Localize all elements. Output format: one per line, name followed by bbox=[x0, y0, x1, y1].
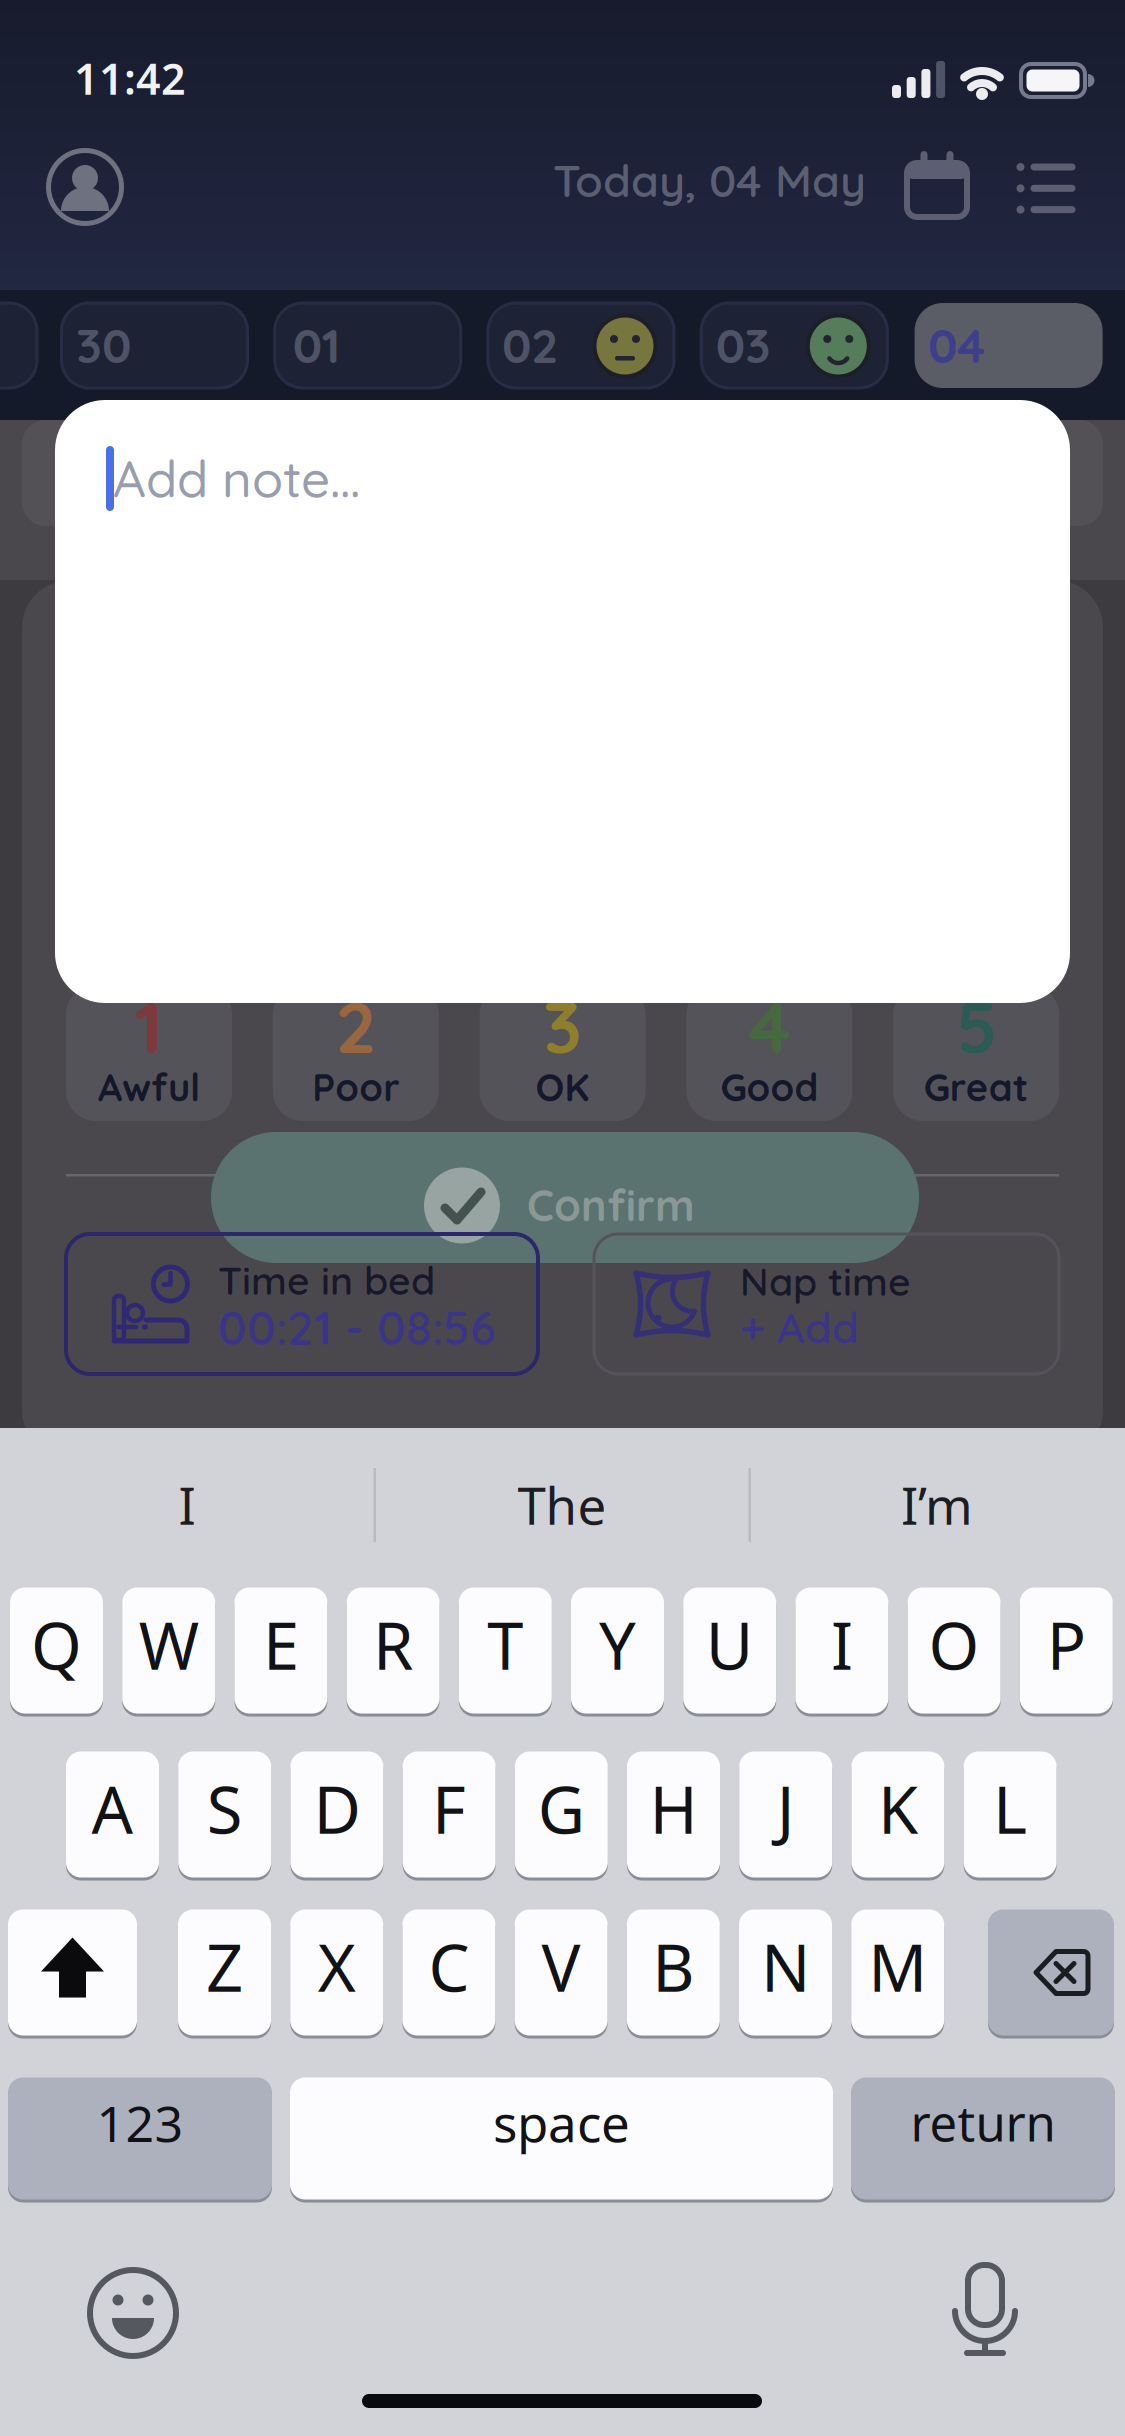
button[interactable]: Diary entries bbox=[1016, 163, 1076, 214]
button[interactable]: T bbox=[459, 1586, 552, 1715]
staticText: H bbox=[649, 1764, 697, 1853]
button[interactable]: return bbox=[851, 2076, 1115, 2201]
button[interactable]: W bbox=[122, 1586, 215, 1715]
button[interactable]: L bbox=[964, 1750, 1057, 1879]
button[interactable]: J bbox=[739, 1750, 832, 1879]
staticText: 2 bbox=[335, 981, 376, 1071]
staticText: M bbox=[868, 1922, 927, 2011]
staticText: A bbox=[91, 1764, 133, 1853]
button[interactable]: 3 bbox=[480, 985, 646, 1121]
button[interactable]: 02 bbox=[488, 303, 674, 388]
button[interactable]: I bbox=[795, 1586, 888, 1715]
staticText: Great bbox=[924, 1063, 1029, 1111]
button[interactable]: 03 bbox=[701, 303, 887, 388]
button[interactable]: R bbox=[347, 1586, 440, 1715]
staticText: 03 bbox=[716, 315, 771, 375]
staticText: 5 bbox=[956, 981, 997, 1071]
staticText: I’m bbox=[901, 1470, 973, 1540]
button[interactable]: 30 bbox=[61, 303, 247, 388]
staticText: G bbox=[538, 1764, 585, 1853]
button[interactable]: C bbox=[402, 1908, 495, 2037]
button[interactable]: Y bbox=[571, 1586, 664, 1715]
button[interactable]: Z bbox=[178, 1908, 271, 2037]
staticText: 02 bbox=[502, 315, 558, 375]
staticText: Confirm bbox=[527, 1178, 695, 1232]
button[interactable]: The bbox=[377, 1450, 747, 1560]
staticText: 30 bbox=[76, 315, 131, 375]
staticText: F bbox=[432, 1764, 466, 1853]
button[interactable]: B bbox=[627, 1908, 720, 2037]
button[interactable]: Delete bbox=[988, 1908, 1114, 2037]
staticText: return bbox=[910, 2089, 1055, 2156]
button[interactable]: P bbox=[1020, 1586, 1113, 1715]
staticText: J bbox=[777, 1764, 795, 1853]
staticText: I bbox=[831, 1600, 853, 1689]
button[interactable]: 5 bbox=[893, 985, 1059, 1121]
button[interactable]: U bbox=[683, 1586, 776, 1715]
button[interactable]: Nap time bbox=[594, 1234, 1059, 1374]
button[interactable]: K bbox=[851, 1750, 944, 1879]
staticText: Z bbox=[206, 1922, 243, 2011]
button[interactable]: O bbox=[908, 1586, 1001, 1715]
button[interactable]: 1 bbox=[66, 985, 232, 1121]
button[interactable]: G bbox=[515, 1750, 608, 1879]
staticText: 04 bbox=[928, 315, 985, 375]
button[interactable]: Q bbox=[10, 1586, 103, 1715]
button[interactable]: Shift bbox=[8, 1908, 137, 2037]
staticText: S bbox=[207, 1764, 243, 1853]
button[interactable]: H bbox=[627, 1750, 720, 1879]
staticText: space bbox=[493, 2088, 630, 2157]
button[interactable]: X bbox=[290, 1908, 383, 2037]
staticText: B bbox=[652, 1922, 694, 2011]
staticText: 123 bbox=[96, 2088, 183, 2156]
button[interactable]: 4 bbox=[686, 985, 852, 1121]
button[interactable]: M bbox=[851, 1908, 944, 2037]
staticText: I bbox=[178, 1470, 195, 1540]
staticText: OK bbox=[536, 1063, 590, 1111]
button[interactable]: 04 bbox=[915, 303, 1103, 388]
staticText: 1 bbox=[135, 981, 163, 1071]
button[interactable]: Confirm bbox=[211, 1132, 919, 1263]
staticText: Today, 04 May bbox=[553, 152, 866, 208]
staticText: K bbox=[878, 1764, 918, 1853]
staticText: E bbox=[263, 1600, 299, 1689]
button[interactable]: Dictation bbox=[940, 2263, 1030, 2357]
button[interactable]: V bbox=[515, 1908, 608, 2037]
staticText: Time in bed bbox=[218, 1256, 435, 1304]
staticText: + Add bbox=[740, 1300, 859, 1354]
staticText: The bbox=[517, 1470, 606, 1540]
staticText: C bbox=[428, 1922, 469, 2011]
button[interactable]: space bbox=[290, 2076, 833, 2201]
button[interactable]: E bbox=[234, 1586, 327, 1715]
staticText: Awful bbox=[98, 1063, 200, 1111]
staticText: N bbox=[761, 1922, 810, 2011]
button[interactable]: S bbox=[178, 1750, 271, 1879]
staticText: O bbox=[929, 1600, 980, 1689]
staticText: 4 bbox=[748, 981, 790, 1071]
button[interactable]: A bbox=[66, 1750, 159, 1879]
staticText: 01 bbox=[293, 315, 341, 375]
staticText: W bbox=[139, 1600, 199, 1689]
button[interactable]: 2 bbox=[273, 985, 439, 1121]
button[interactable]: Emoji bbox=[88, 2268, 178, 2358]
button[interactable]: N bbox=[739, 1908, 832, 2037]
staticText: V bbox=[542, 1922, 581, 2011]
staticText: R bbox=[373, 1600, 413, 1689]
staticText: Add note... bbox=[113, 446, 360, 510]
button[interactable]: Add note bbox=[55, 400, 1070, 1003]
button[interactable]: Time in bed bbox=[66, 1234, 538, 1374]
button[interactable]: D bbox=[290, 1750, 383, 1879]
button[interactable]: F bbox=[403, 1750, 496, 1879]
staticText: Good bbox=[720, 1063, 818, 1111]
button[interactable]: I bbox=[2, 1450, 372, 1560]
staticText: U bbox=[706, 1600, 754, 1689]
staticText: 11:42 bbox=[74, 49, 186, 107]
staticText: X bbox=[318, 1922, 356, 2011]
staticText: T bbox=[487, 1600, 523, 1689]
staticText: Nap time bbox=[740, 1257, 911, 1305]
button[interactable]: I’m bbox=[752, 1450, 1122, 1560]
button[interactable]: Profile bbox=[48, 150, 122, 224]
button[interactable]: 01 bbox=[275, 303, 461, 388]
button[interactable]: Calendar bbox=[907, 151, 967, 217]
button[interactable]: 123 bbox=[8, 2076, 272, 2201]
